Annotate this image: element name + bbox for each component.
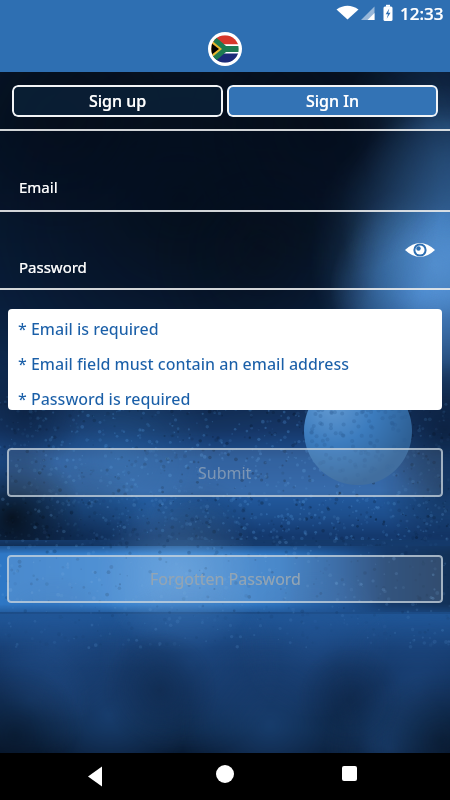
button[interactable]: Submit	[7, 448, 443, 497]
staticText: Forgotten Password	[150, 568, 301, 590]
staticText: * Email is required	[18, 318, 159, 340]
staticText: Password	[19, 257, 87, 277]
staticText: * Password is required	[18, 388, 191, 410]
staticText: 12:33	[400, 2, 444, 25]
staticText: Sign up	[89, 90, 147, 112]
button[interactable]	[86, 766, 104, 787]
button[interactable]: Sign up	[12, 85, 223, 117]
button[interactable]: Sign In	[227, 85, 438, 117]
button[interactable]	[342, 766, 357, 781]
button[interactable]	[404, 239, 436, 261]
staticText: Submit	[198, 462, 252, 484]
staticText: * Email field must contain an email addr…	[18, 353, 350, 375]
staticText: Sign In	[306, 90, 359, 112]
button[interactable]: Forgotten Password	[7, 555, 443, 603]
button[interactable]	[216, 765, 234, 783]
staticText: Email	[19, 177, 58, 197]
